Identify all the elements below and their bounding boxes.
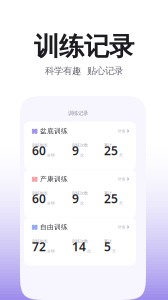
staticText: 14 xyxy=(72,239,86,254)
staticText: 训练次数 xyxy=(72,191,88,195)
staticText: 训练时长 xyxy=(32,143,48,147)
staticText: 自由训练 xyxy=(40,223,68,231)
button[interactable]: 自由训练 xyxy=(24,218,136,266)
staticText: 60 xyxy=(32,143,46,158)
staticText: 25 xyxy=(104,191,118,206)
staticText: 训练时长 xyxy=(32,191,48,195)
staticText: 详情 xyxy=(117,129,125,133)
button[interactable]: 产康训练 xyxy=(24,170,136,218)
staticText: 累计 xyxy=(104,239,112,243)
staticText: 60 xyxy=(32,191,46,206)
staticText: 训练记录 xyxy=(68,110,88,117)
staticText: 训练记录 xyxy=(34,31,134,62)
staticText: 详情 xyxy=(117,177,125,181)
staticText: 分钟 xyxy=(47,153,55,157)
staticText: 9 xyxy=(72,143,79,158)
staticText: 天 xyxy=(119,153,123,157)
staticText: 5 xyxy=(104,239,111,254)
staticText: 72 xyxy=(32,239,46,254)
staticText: 训练次数 xyxy=(72,239,88,243)
staticText: 详情 xyxy=(117,225,125,229)
staticText: 训练次数 xyxy=(72,143,88,147)
staticText: 天 xyxy=(119,201,123,205)
staticText: 天 xyxy=(112,249,116,253)
staticText: 25 xyxy=(104,143,118,158)
staticText: 产康训练 xyxy=(40,175,68,183)
staticText: 盆底训练 xyxy=(40,127,68,135)
staticText: 次 xyxy=(87,249,91,253)
button[interactable]: 盆底训练 xyxy=(24,122,136,170)
staticText: 次 xyxy=(80,153,84,157)
staticText: 累计 xyxy=(104,143,112,147)
staticText: 分钟 xyxy=(47,249,55,253)
staticText: 9 xyxy=(72,191,79,206)
staticText: 训练时长 xyxy=(32,239,48,243)
staticText: 分钟 xyxy=(47,201,55,205)
staticText: 次 xyxy=(80,201,84,205)
staticText: 科学有趣 贴心记录 xyxy=(45,65,123,77)
staticText: 累计 xyxy=(104,191,112,195)
